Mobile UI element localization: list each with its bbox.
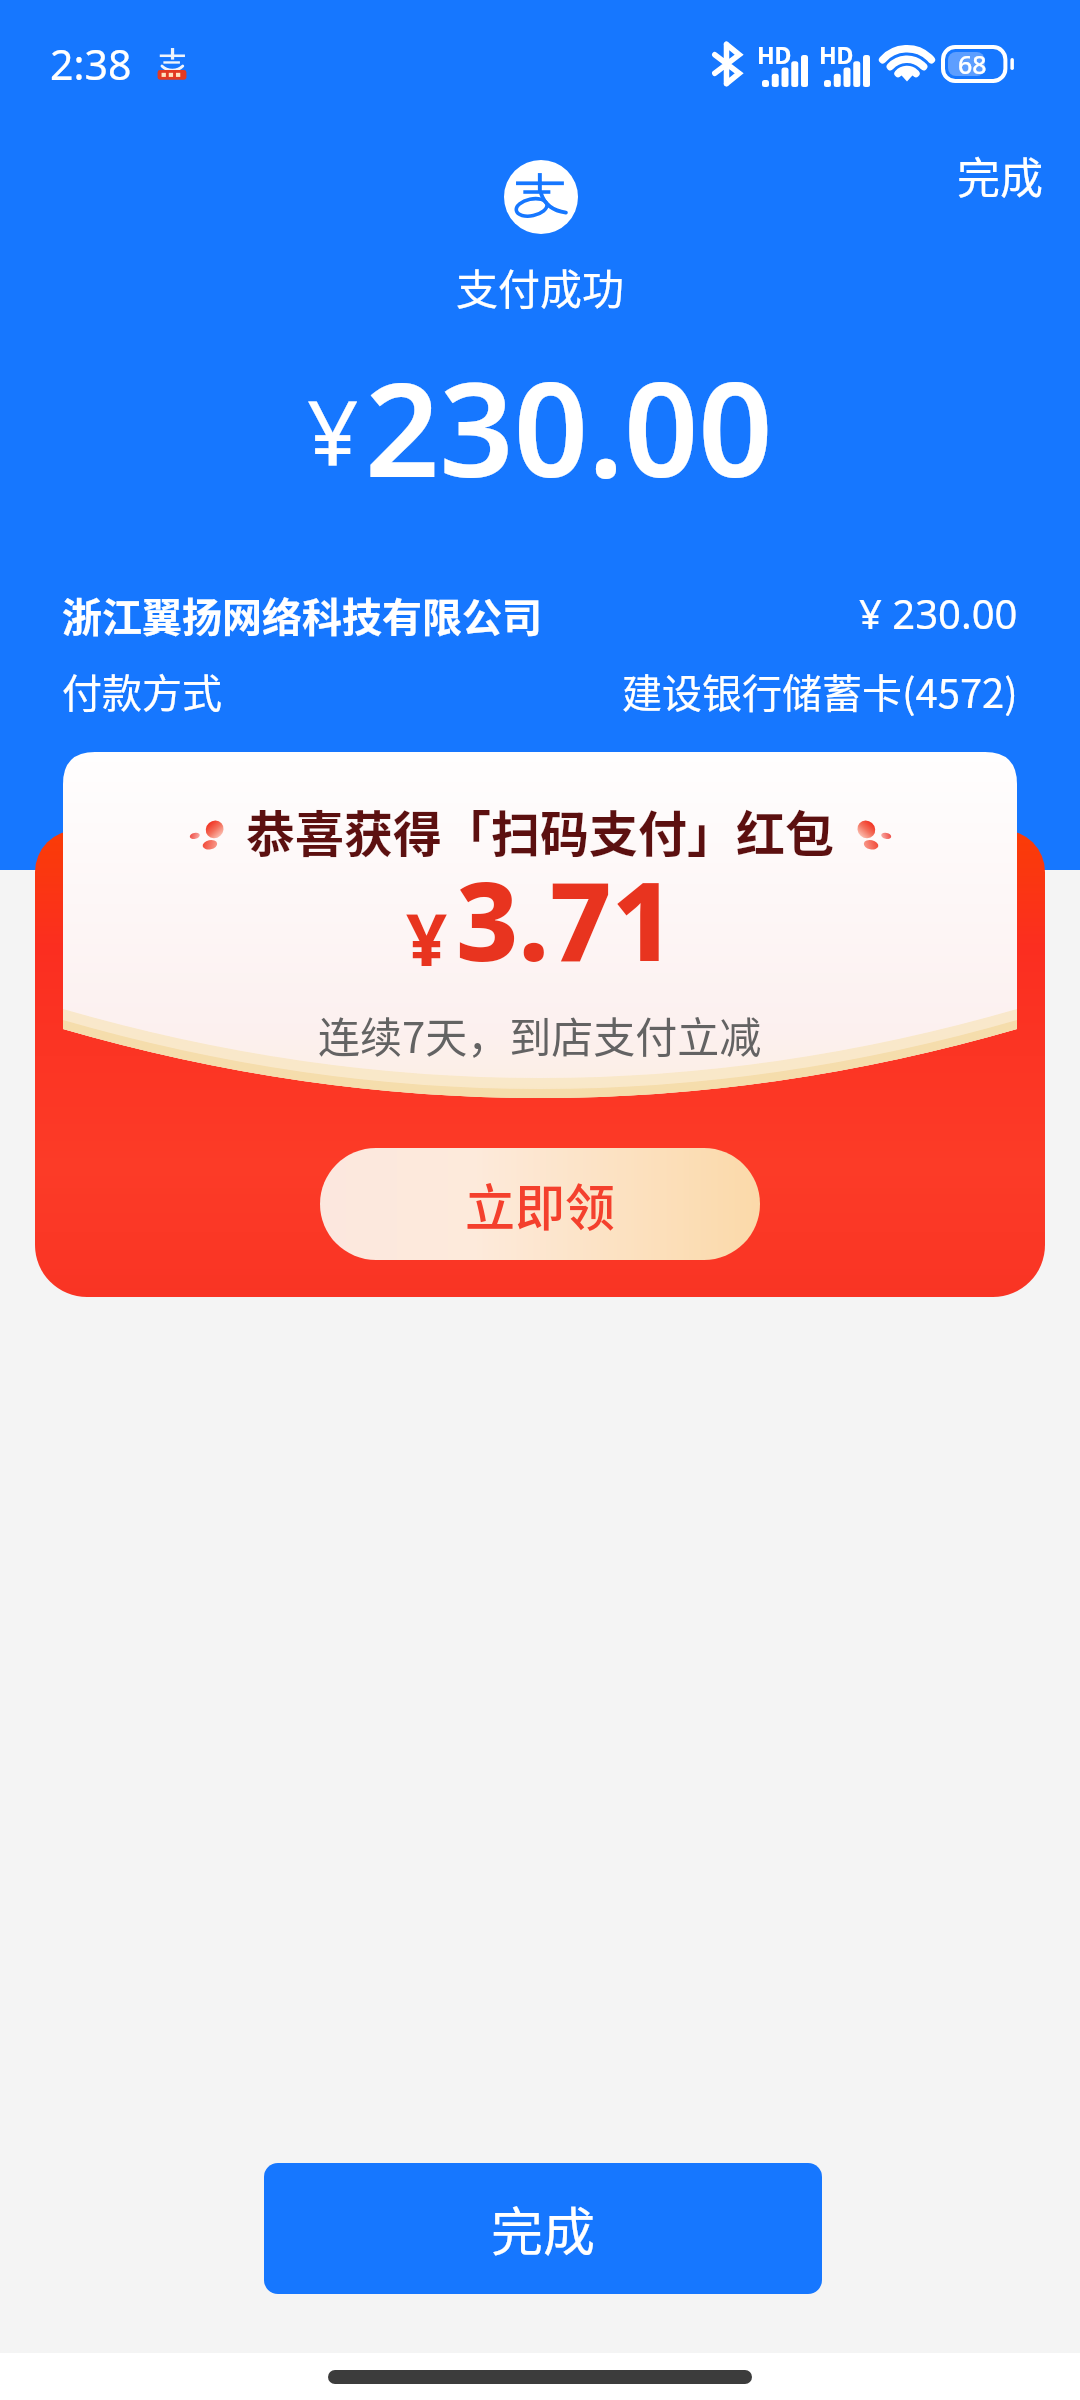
staticText: ¥ [307,370,359,493]
staticText: 付款方式 [62,662,222,720]
button[interactable]: 立即领 [320,1148,760,1260]
staticText: 建设银行储蓄卡(4572) [622,662,1018,720]
staticText: 立即领 [465,1168,615,1240]
staticText: 完成 [491,2191,596,2266]
staticText: 2:38 [50,36,132,92]
staticText: 恭喜获得「扫码支付」红包 [246,795,835,866]
staticText: 68 [958,47,987,81]
staticText: ¥ 230.00 [859,586,1018,640]
staticText: 支付成功 [456,256,625,317]
staticText: HD [819,39,854,70]
staticText: 230.00 [365,338,773,515]
staticText: 连续7天，到店支付立减 [318,1004,762,1065]
staticText: ¥ [406,889,448,987]
staticText: HD [757,39,792,70]
button[interactable]: 完成 [264,2163,822,2294]
staticText: 3.71 [456,846,675,993]
staticText: 完成 [957,144,1043,206]
staticText: 浙江翼扬网络科技有限公司 [62,586,542,644]
button[interactable]: 完成 [931,132,1068,218]
